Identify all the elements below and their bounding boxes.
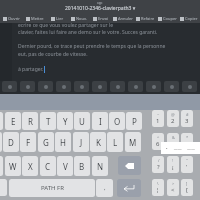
staticText: F — [26, 137, 31, 148]
button[interactable]: Shortcut — [110, 81, 125, 92]
staticText: [ — [186, 186, 188, 194]
button[interactable]: Shortcut — [74, 81, 89, 92]
button[interactable]: Return — [117, 179, 141, 197]
staticText: D — [8, 137, 14, 148]
staticText: Lier — [56, 16, 64, 21]
staticText: K — [96, 137, 101, 148]
button[interactable]: Y — [57, 112, 73, 130]
staticText: @ — [171, 112, 175, 117]
button[interactable]: Shortcut — [2, 81, 17, 92]
button[interactable]: * — [181, 133, 193, 150]
button[interactable]: Backspace — [118, 156, 141, 175]
staticText: J — [80, 137, 83, 148]
button[interactable]: O — [109, 112, 125, 130]
staticText: Annuler — [118, 16, 133, 21]
staticText: 7 — [171, 140, 175, 148]
staticText: B — [79, 161, 85, 172]
staticText: \ — [157, 181, 159, 186]
staticText: T — [46, 116, 51, 127]
button[interactable]: D — [3, 132, 19, 152]
staticText: Nouv. — [76, 16, 87, 21]
button[interactable]: Nouv. — [68, 16, 90, 21]
staticText: Envoi — [98, 16, 109, 21]
button[interactable]: Mettre — [23, 16, 46, 21]
button[interactable]: X — [22, 156, 38, 176]
button[interactable]: Annuler — [112, 16, 134, 21]
staticText: H — [60, 137, 66, 148]
button[interactable]: G — [38, 132, 54, 152]
staticText: 8 — [185, 140, 189, 148]
staticText: 3 — [185, 117, 189, 125]
staticText: " — [186, 158, 188, 163]
button[interactable]: " — [181, 156, 193, 173]
staticText: G — [43, 137, 49, 148]
button[interactable]: C — [40, 156, 56, 176]
button[interactable]: \ — [152, 179, 164, 196]
button[interactable]: Refaire — [134, 16, 156, 21]
button[interactable]: Ouvrir — [0, 16, 23, 21]
button[interactable]: Shortcut — [128, 81, 143, 92]
staticText: L — [113, 137, 118, 148]
button[interactable]: > — [167, 179, 179, 196]
button[interactable]: ! — [167, 156, 179, 173]
staticText: ecrire ce que vous voulez partager sur l… — [18, 22, 113, 29]
button[interactable]: R — [22, 112, 38, 130]
button[interactable]: ~ — [152, 110, 164, 127]
button[interactable]: P — [126, 112, 142, 130]
staticText: > — [172, 181, 175, 186]
button[interactable]: U — [74, 112, 90, 130]
staticText: ^ — [157, 135, 160, 140]
button[interactable]: M — [125, 132, 141, 152]
button[interactable]: Couper — [156, 16, 178, 21]
button[interactable] — [0, 132, 2, 152]
button[interactable]: @ — [167, 110, 179, 127]
button[interactable] — [0, 179, 7, 196]
button[interactable] — [0, 156, 3, 176]
button[interactable]: H — [55, 132, 71, 152]
button[interactable]: V — [57, 156, 73, 176]
button[interactable]: Shortcut — [56, 81, 71, 92]
staticText: à partager. — [18, 66, 44, 73]
staticText: E — [11, 116, 16, 127]
button[interactable]: W — [5, 156, 21, 176]
button[interactable]: E — [5, 112, 21, 130]
button[interactable]: Envoi — [90, 16, 112, 21]
staticText: ? — [157, 163, 160, 171]
staticText: • —— —— — [166, 146, 195, 151]
button[interactable]: Shortcut — [164, 81, 179, 92]
button[interactable]: & — [167, 133, 179, 150]
staticText: < — [171, 186, 175, 194]
button[interactable]: J — [73, 132, 89, 152]
staticText: Refaire — [141, 16, 155, 21]
staticText: Y — [63, 116, 68, 127]
button[interactable]: K — [90, 132, 106, 152]
button[interactable]: Shortcut — [38, 81, 53, 92]
button[interactable]: ^ — [152, 133, 164, 150]
staticText: U — [79, 116, 85, 127]
button[interactable]: Shortcut — [92, 81, 107, 92]
button[interactable]: Lier — [46, 16, 68, 21]
staticText: # — [186, 112, 189, 117]
button[interactable]: B — [74, 156, 90, 176]
button[interactable]: Shortcut — [146, 81, 161, 92]
button[interactable]: N — [92, 156, 108, 176]
button[interactable]: Shortcut — [182, 81, 197, 92]
staticText: M — [129, 137, 137, 148]
staticText: R — [28, 116, 33, 127]
button[interactable]: Copier — [178, 16, 200, 21]
staticText: ! — [172, 158, 174, 163]
button[interactable]: Shortcut — [20, 81, 35, 92]
staticText: 6 — [156, 140, 160, 148]
button[interactable]: / — [152, 156, 164, 173]
button[interactable]: I — [92, 112, 108, 130]
button[interactable]: L — [107, 132, 123, 152]
button[interactable] — [0, 112, 3, 130]
button[interactable]: # — [181, 110, 193, 127]
button[interactable]: , — [96, 179, 113, 197]
button[interactable]: F — [20, 132, 36, 152]
button[interactable]: ] — [181, 179, 193, 196]
button[interactable]: PATH FR — [9, 179, 95, 197]
staticText: ' — [186, 163, 188, 171]
staticText: V — [63, 161, 68, 172]
button[interactable]: T — [40, 112, 56, 130]
